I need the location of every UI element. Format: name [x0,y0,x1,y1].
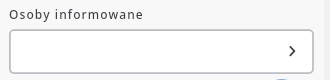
button[interactable]: Dodaj [252,79,312,80]
button[interactable]: Osoby informowane [9,29,314,74]
staticText: Osoby informowane [9,6,144,22]
